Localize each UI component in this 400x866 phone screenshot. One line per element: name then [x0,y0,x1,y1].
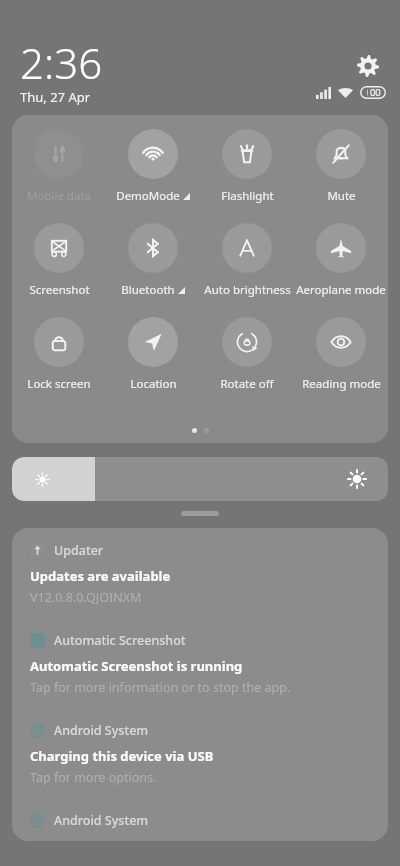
staticText: Bluetooth [121,282,175,298]
staticText: Thu, 27 Apr [20,88,91,105]
button[interactable]: Mute [294,129,388,204]
button[interactable]: Flashlight [200,129,294,204]
button[interactable]: Settings [352,50,384,82]
button[interactable]: Android System [12,708,388,798]
staticText: Android System [54,812,149,829]
staticText: Automatic Screenshot [54,632,186,649]
staticText: DemoMode [116,188,180,204]
staticText: Updater [54,542,104,559]
button[interactable]: Lock screen [12,317,106,392]
staticText: Automatic Screenshot is running [30,657,243,675]
staticText: Flashlight [221,188,274,204]
staticText: 2:36 [20,34,103,91]
staticText: V12.0.8.0.QJOINXM [30,589,142,606]
staticText: Charging this device via USB [30,747,214,765]
staticText: Android System [54,722,149,739]
button[interactable]: Mobile data [12,129,106,204]
staticText: Updates are available [30,567,171,585]
staticText: Mobile data [27,188,91,204]
staticText: Lock screen [27,376,91,392]
button[interactable]: Auto brightness [200,223,294,298]
staticText: Location [130,376,177,392]
button[interactable]: Brightness [12,457,388,501]
button[interactable]: Reading mode [294,317,388,392]
button[interactable]: Bluetooth [106,223,200,298]
staticText: Mute [327,188,356,204]
button[interactable]: Rotate off [200,317,294,392]
button[interactable]: Updater [12,528,388,618]
button[interactable]: DemoMode [106,129,200,204]
staticText: Rotate off [220,376,274,392]
button[interactable]: Android System [12,798,388,841]
staticText: Tap for more options. [30,769,157,786]
staticText: Screenshot [29,282,90,298]
button[interactable]: Location [106,317,200,392]
button[interactable]: Aeroplane mode [294,223,388,298]
button[interactable]: Automatic Screenshot [12,618,388,708]
staticText: Aeroplane mode [296,282,386,298]
staticText: Tap for more information or to stop the … [30,679,291,696]
button[interactable]: Screenshot [12,223,106,298]
staticText: Reading mode [302,376,381,392]
staticText: Auto brightness [204,282,291,298]
